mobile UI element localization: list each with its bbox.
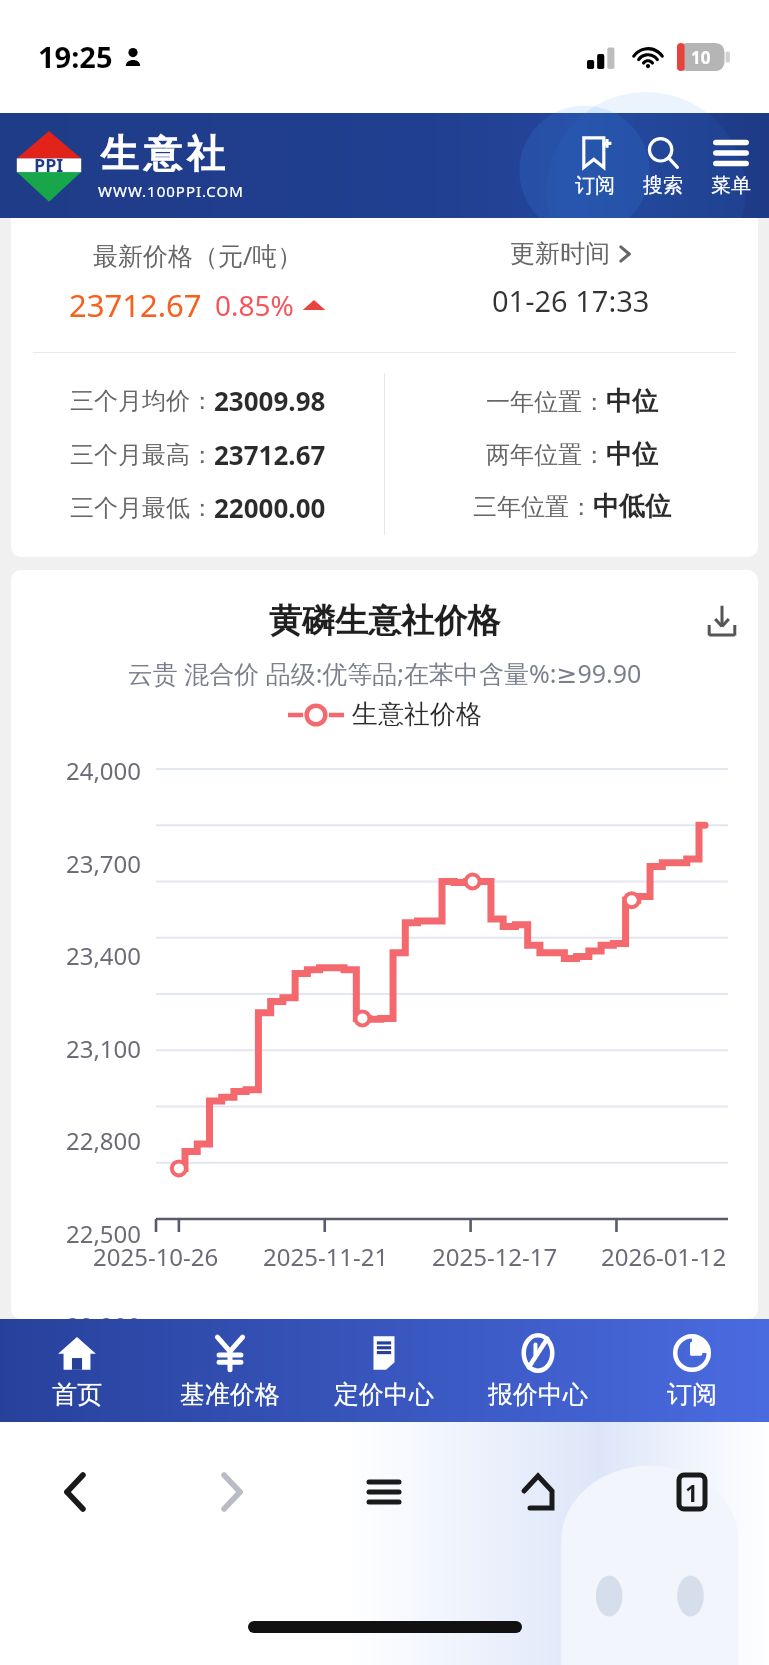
staticText: 首页: [52, 1379, 102, 1410]
staticText: 2026-01-12: [601, 1240, 727, 1273]
button[interactable]: 后退: [0, 1422, 153, 1562]
staticText: 中低位: [593, 490, 671, 523]
staticText: 三个月最高：: [70, 440, 214, 470]
button[interactable]: 前进: [153, 1422, 307, 1562]
staticText: 最新价格（元/吨）: [93, 238, 303, 272]
staticText: 两年位置：: [486, 440, 606, 470]
staticText: 2025-11-21: [263, 1240, 389, 1273]
staticText: 2025-12-17: [432, 1240, 558, 1273]
staticText: 报价中心: [488, 1379, 588, 1410]
staticText: 10: [691, 46, 711, 69]
button[interactable]: 订阅: [615, 1319, 769, 1422]
button[interactable]: 菜单: [709, 131, 753, 200]
button[interactable]: 标签页: [615, 1422, 769, 1562]
staticText: 23,100: [11, 1032, 141, 1065]
staticText: 22000.00: [214, 490, 326, 525]
button[interactable]: 定价中心: [307, 1319, 461, 1422]
staticText: 19:25: [38, 37, 113, 76]
staticText: 0.85%: [215, 286, 294, 324]
staticText: 订阅: [575, 173, 615, 198]
staticText: 更新时间: [510, 238, 610, 269]
staticText: 23712.67: [214, 437, 326, 472]
button[interactable]: 搜索: [641, 131, 685, 200]
staticText: 23712.67: [69, 284, 202, 326]
staticText: 基准价格: [180, 1379, 280, 1410]
staticText: 23009.98: [214, 383, 326, 418]
staticText: 23,400: [11, 939, 141, 972]
staticText: 订阅: [667, 1379, 717, 1410]
staticText: 2025-10-26: [93, 1240, 219, 1273]
staticText: 22,500: [11, 1217, 141, 1250]
staticText: 生意社价格: [352, 698, 482, 731]
button[interactable]: 基准价格: [153, 1319, 307, 1422]
button[interactable]: 主页: [461, 1422, 615, 1562]
staticText: WWW.100PPI.COM: [98, 181, 244, 201]
staticText: 黄磷生意社价格: [269, 600, 500, 642]
staticText: 云贵 混合价 品级:优等品;在苯中含量%:≥99.90: [11, 656, 758, 690]
staticText: 1: [685, 1477, 699, 1508]
staticText: 生意社: [98, 130, 227, 178]
staticText: 菜单: [711, 173, 751, 198]
button[interactable]: 报价中心: [461, 1319, 615, 1422]
staticText: 三个月均价：: [70, 386, 214, 416]
button[interactable]: 下载: [702, 601, 742, 641]
button[interactable]: 更新时间: [510, 238, 632, 269]
staticText: 中位: [606, 438, 658, 471]
button[interactable]: 菜单: [307, 1422, 461, 1562]
staticText: 22,200: [11, 1309, 141, 1319]
staticText: 三年位置：: [473, 492, 593, 522]
staticText: 22,800: [11, 1124, 141, 1157]
staticText: 23,700: [11, 847, 141, 880]
button[interactable]: 订阅: [573, 131, 617, 200]
staticText: PPI: [34, 153, 64, 178]
staticText: 三个月最低：: [70, 493, 214, 523]
staticText: 定价中心: [334, 1379, 434, 1410]
staticText: 01-26 17:33: [492, 281, 650, 320]
staticText: 一年位置：: [486, 387, 606, 417]
button[interactable]: 首页: [0, 1319, 153, 1422]
staticText: 中位: [606, 385, 658, 418]
staticText: 搜索: [643, 173, 683, 198]
staticText: 24,000: [11, 754, 141, 787]
